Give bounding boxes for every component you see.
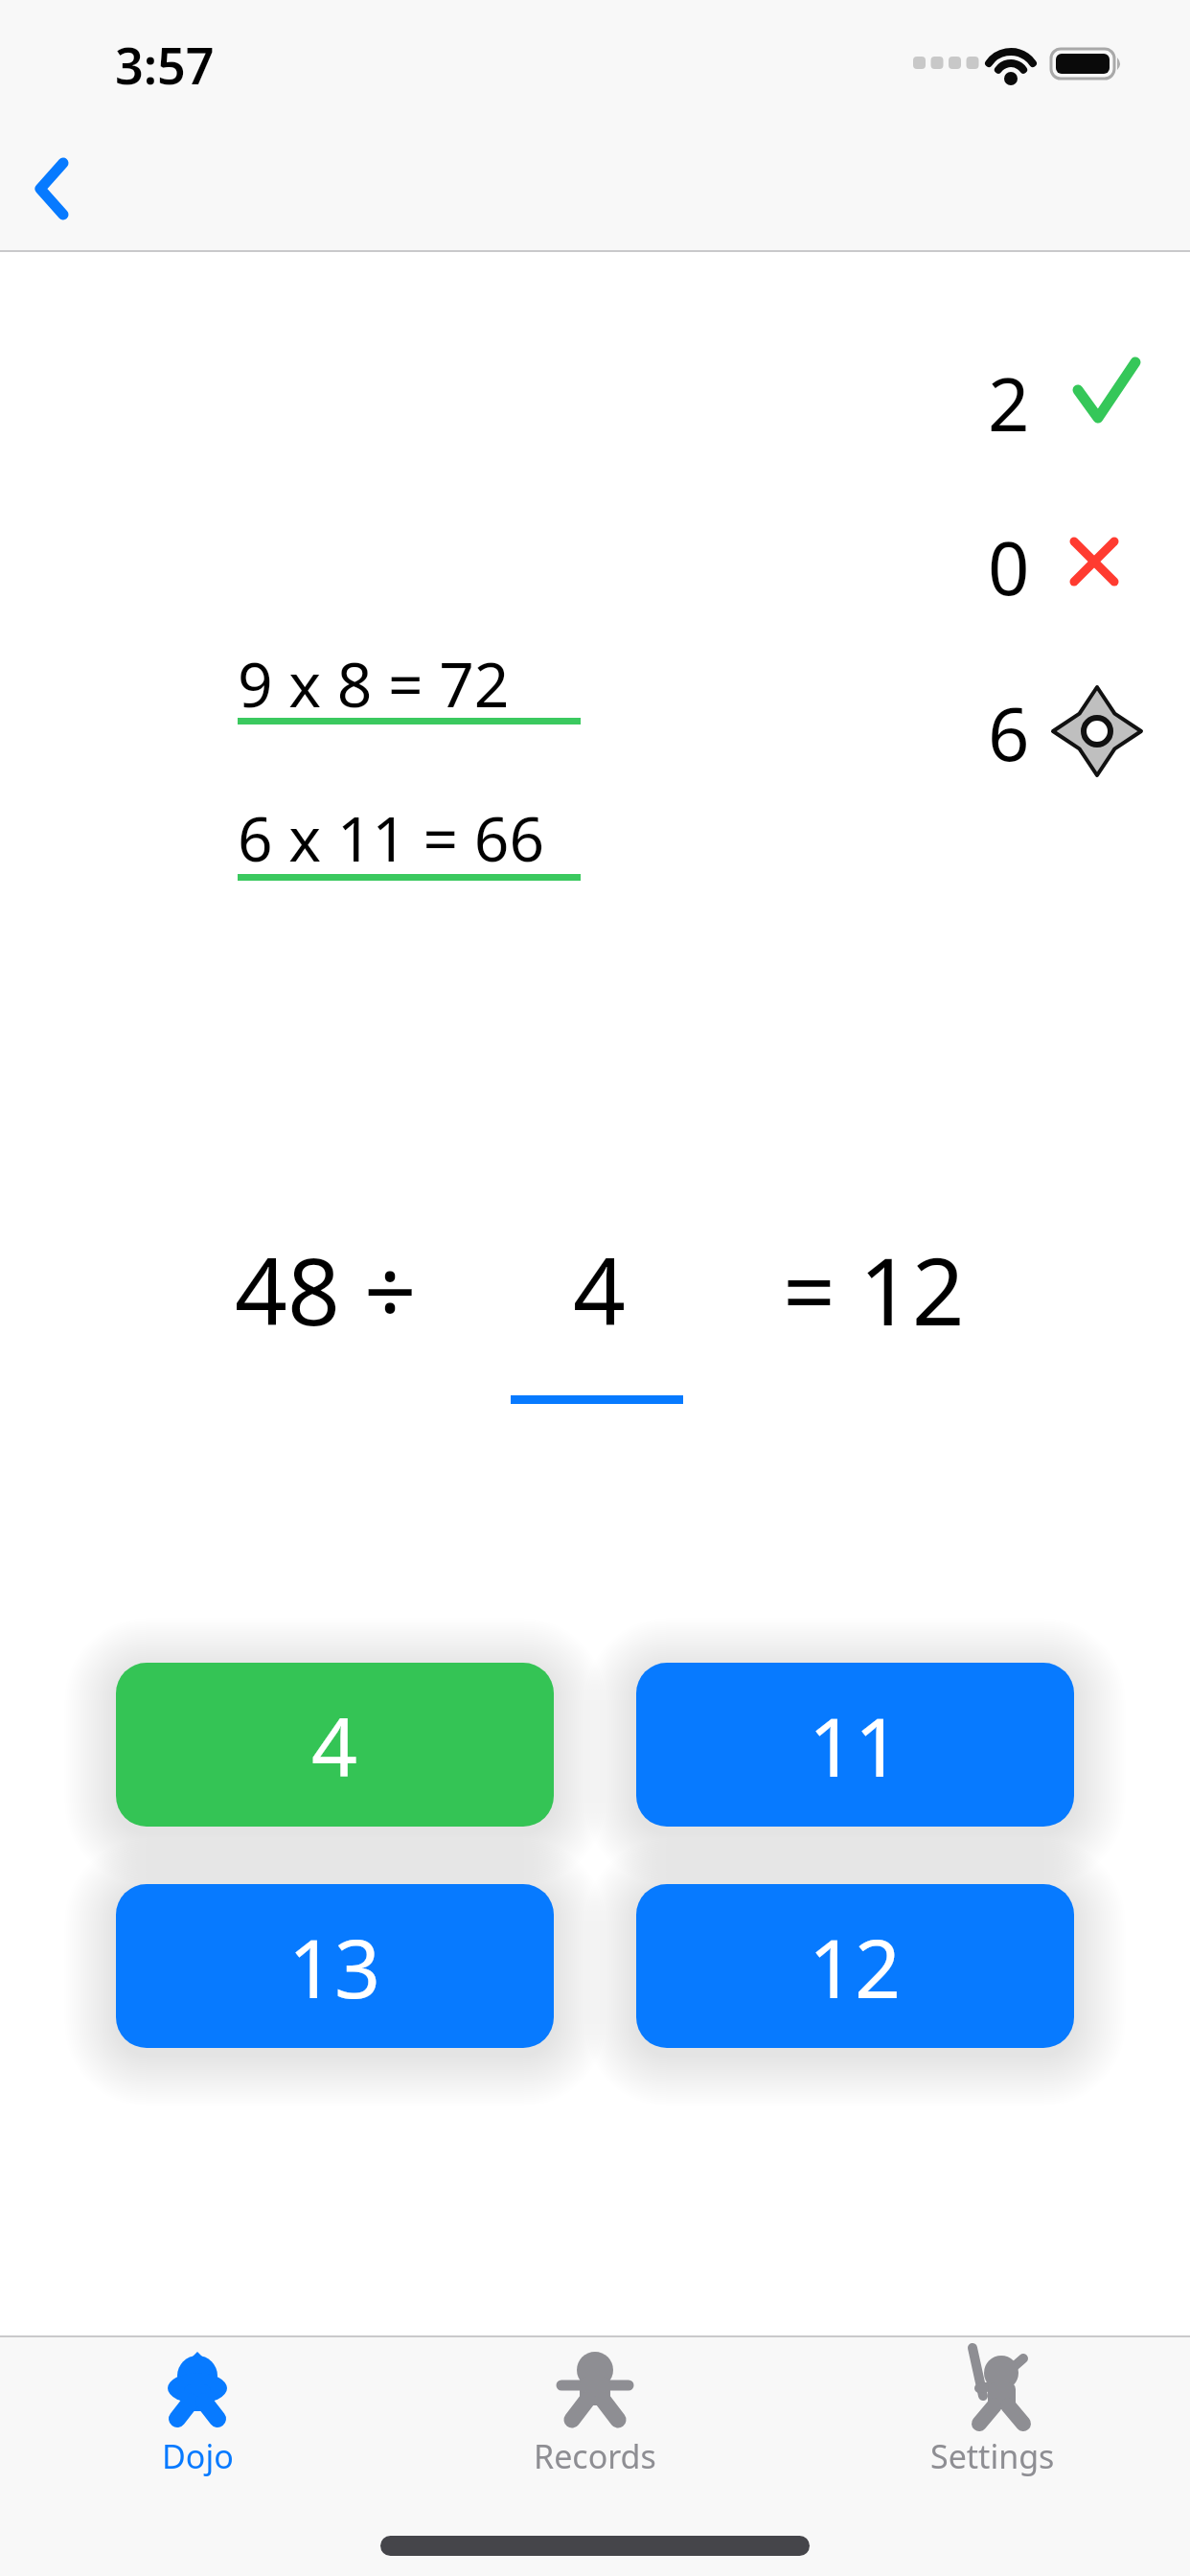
staticText: = 12 (783, 1227, 965, 1342)
staticText: 0 (988, 517, 1030, 617)
staticText: 12 (809, 1912, 902, 2021)
staticText: 6 x 11 = 66 (238, 796, 545, 880)
staticText: 48 ÷ (235, 1227, 417, 1342)
button[interactable]: Dojo (92, 2342, 303, 2481)
staticText: 11 (809, 1690, 902, 1800)
button[interactable]: 11 (636, 1663, 1074, 1827)
button[interactable]: Settings (887, 2342, 1098, 2481)
staticText: 2 (988, 354, 1030, 453)
button[interactable]: 4 (116, 1663, 554, 1827)
staticText: 9 x 8 = 72 (238, 642, 510, 725)
staticText: 3:57 (115, 31, 215, 99)
button[interactable]: Records (490, 2342, 700, 2481)
button[interactable] (19, 144, 96, 235)
button[interactable]: 13 (116, 1884, 554, 2048)
staticText: Dojo (162, 2434, 234, 2478)
staticText: 13 (288, 1912, 381, 2021)
button[interactable]: 12 (636, 1884, 1074, 2048)
staticText: Settings (930, 2434, 1055, 2478)
staticText: 4 (573, 1227, 626, 1342)
staticText: 6 (988, 683, 1030, 783)
staticText: 4 (311, 1690, 358, 1800)
staticText: Records (534, 2434, 656, 2478)
